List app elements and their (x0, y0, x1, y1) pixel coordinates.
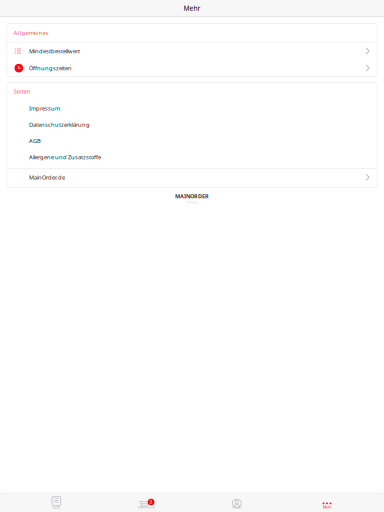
staticText: Allergene und Zusatzstoffe (29, 153, 101, 161)
staticText: MainOrder.de (29, 173, 65, 181)
staticText: 0 (150, 499, 153, 505)
button[interactable]: Öffnungszeiten (7, 60, 377, 77)
button[interactable]: Mindestbestellwert (7, 42, 377, 60)
staticText: MAINORDER (175, 192, 209, 200)
button[interactable]: AGB (7, 133, 377, 149)
button[interactable]: MainOrder.de (7, 169, 377, 185)
button[interactable]: Karte (11, 493, 101, 512)
button[interactable]: Profil (192, 493, 282, 512)
staticText: Allgemeines (13, 29, 48, 37)
button[interactable]: Impressum (7, 100, 377, 116)
button[interactable]: Allergene und Zusatzstoffe (7, 149, 377, 165)
button[interactable]: Datenschutzerklärung (7, 116, 377, 133)
button[interactable]: Mehr (282, 493, 372, 512)
staticText: Karte (52, 505, 60, 510)
staticText: AGB (29, 137, 41, 145)
staticText: Profil (233, 505, 241, 510)
button[interactable]: 0 (101, 493, 192, 512)
staticText: Seiten (13, 87, 30, 95)
staticText: Datenschutzerklärung (29, 121, 90, 128)
staticText: Mindestbestellwert (29, 47, 80, 55)
staticText: Mehr (323, 505, 331, 510)
staticText: Mehr (183, 4, 200, 13)
staticText: Warenkorb (138, 505, 155, 510)
staticText: Öffnungszeiten (29, 64, 72, 72)
staticText: Impressum (29, 104, 60, 112)
staticText: V 7.0.1 (186, 200, 197, 205)
